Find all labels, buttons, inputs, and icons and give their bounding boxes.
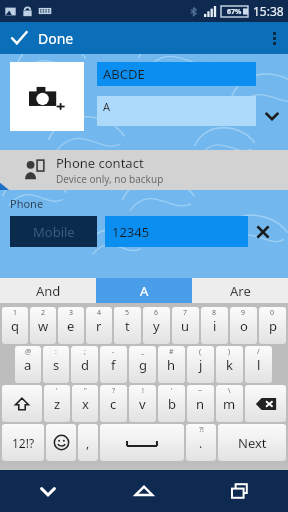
button[interactable]: Recent apps xyxy=(192,470,288,512)
button[interactable]: A xyxy=(96,278,192,303)
button[interactable]: ? xyxy=(100,385,127,422)
button[interactable]: 8 xyxy=(201,307,228,344)
button[interactable]: 6 xyxy=(143,307,170,344)
button[interactable]: Done xyxy=(0,22,86,54)
button[interactable]: Add photo xyxy=(10,62,84,131)
button[interactable]: Hide keyboard xyxy=(0,470,96,512)
button[interactable]: ?! xyxy=(186,424,216,461)
button[interactable]: 12!? xyxy=(2,424,44,461)
staticText: And xyxy=(36,282,61,300)
button[interactable]: 1 xyxy=(2,307,28,344)
button[interactable]: Shift xyxy=(2,385,42,422)
button[interactable]: # xyxy=(158,346,185,383)
staticText: - xyxy=(112,347,115,357)
button[interactable]: 9 xyxy=(230,307,257,344)
button[interactable]: _ xyxy=(129,346,156,383)
staticText: ? xyxy=(112,386,116,396)
button[interactable]: Emoji xyxy=(46,424,76,461)
button[interactable]: 4 xyxy=(86,307,112,344)
staticText: 67% xyxy=(227,7,242,17)
staticText: : xyxy=(55,347,57,357)
button[interactable]: 7 xyxy=(172,307,199,344)
staticText: i xyxy=(213,317,217,335)
button[interactable]: Delete phone number xyxy=(248,217,278,247)
button[interactable]: Are xyxy=(192,278,288,303)
staticText: m xyxy=(223,395,236,413)
staticText: b xyxy=(168,395,176,413)
staticText: k xyxy=(226,356,233,374)
button[interactable]: And xyxy=(0,278,96,303)
staticText: . xyxy=(199,435,203,451)
button[interactable]: / xyxy=(245,346,272,383)
button[interactable]: More options xyxy=(260,22,288,54)
button[interactable]: ! xyxy=(129,385,156,422)
button[interactable]: ; xyxy=(71,346,98,383)
button[interactable]: @ xyxy=(15,346,41,383)
button[interactable]: \ xyxy=(216,385,243,422)
staticText: 15:38 xyxy=(253,3,284,19)
button[interactable]: Expand name fields xyxy=(256,62,288,150)
button[interactable]: 0 xyxy=(259,307,286,344)
staticText: Next xyxy=(238,434,267,452)
button[interactable]: 2 xyxy=(30,307,56,344)
button[interactable]: ' xyxy=(44,385,70,422)
staticText: ABCDE xyxy=(103,65,145,83)
staticText: z xyxy=(54,395,61,413)
staticText: _ xyxy=(141,347,145,357)
staticText: 4 xyxy=(97,308,102,318)
button[interactable]: Next xyxy=(218,424,286,461)
staticText: t xyxy=(125,317,130,335)
button[interactable]: " xyxy=(72,385,98,422)
staticText: , xyxy=(86,435,90,451)
button[interactable]: ' xyxy=(158,385,185,422)
staticText: j xyxy=(199,356,203,374)
staticText: n xyxy=(196,395,205,413)
staticText: e xyxy=(67,317,75,335)
staticText: 12345 xyxy=(112,223,150,241)
staticText: ?! xyxy=(199,425,204,435)
staticText: ( xyxy=(199,347,202,357)
button[interactable]: 12345 xyxy=(105,216,248,247)
staticText: ) xyxy=(228,347,231,357)
button[interactable]: - xyxy=(100,346,127,383)
button[interactable]: 3 xyxy=(58,307,84,344)
staticText: 12!? xyxy=(12,435,35,451)
button[interactable]: Backspace xyxy=(245,385,286,422)
staticText: Mobile xyxy=(33,223,75,241)
staticText: 5 xyxy=(125,308,130,318)
staticText: Phone contact xyxy=(56,154,144,172)
staticText: 2 xyxy=(41,308,46,318)
staticText: 6 xyxy=(154,308,159,318)
staticText: o xyxy=(240,317,248,335)
staticText: ' xyxy=(171,386,173,396)
staticText: w xyxy=(38,317,49,335)
button[interactable]: Phone contact xyxy=(0,150,288,190)
button[interactable]: ( xyxy=(187,346,214,383)
button[interactable]: : xyxy=(43,346,69,383)
button[interactable]: 5 xyxy=(114,307,141,344)
staticText: ~ xyxy=(198,386,203,396)
button[interactable]: ~ xyxy=(187,385,214,422)
staticText: / xyxy=(257,347,260,357)
staticText: 9 xyxy=(241,308,246,318)
staticText: Are xyxy=(230,282,251,300)
staticText: v xyxy=(139,395,146,413)
staticText: u xyxy=(181,317,190,335)
staticText: p xyxy=(269,317,277,335)
button[interactable]: Mobile xyxy=(10,216,97,247)
button[interactable]: ) xyxy=(216,346,243,383)
staticText: a xyxy=(24,356,32,374)
staticText: Phone xyxy=(10,196,44,211)
button[interactable]: , xyxy=(78,424,98,461)
staticText: s xyxy=(53,356,60,374)
staticText: 8 xyxy=(212,308,217,318)
button[interactable]: A xyxy=(97,96,256,126)
button[interactable]: Space xyxy=(100,424,184,461)
staticText: r xyxy=(96,317,102,335)
staticText: 1 xyxy=(13,308,18,318)
staticText: # xyxy=(169,347,174,357)
button[interactable]: ABCDE xyxy=(97,62,256,86)
staticText: h xyxy=(167,356,176,374)
button[interactable]: Home xyxy=(96,470,192,512)
staticText: q xyxy=(11,317,19,335)
